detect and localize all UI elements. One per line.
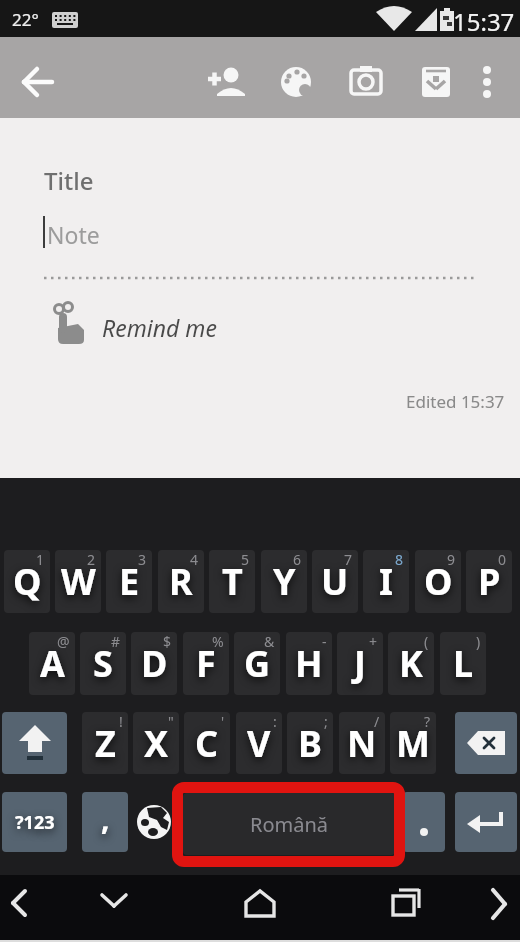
staticText: E [119, 557, 140, 606]
staticText: R [169, 557, 193, 606]
button[interactable]: O [415, 550, 461, 613]
button[interactable]: F [183, 632, 229, 695]
staticText: O [424, 557, 453, 606]
button[interactable] [455, 712, 517, 774]
button[interactable]: H [286, 632, 332, 695]
button[interactable] [0, 878, 40, 928]
button[interactable]: Q [4, 550, 50, 613]
staticText: 0 [498, 550, 507, 569]
button[interactable] [480, 878, 520, 928]
staticText: V [247, 719, 271, 768]
button[interactable] [235, 878, 285, 928]
button[interactable]: K [388, 632, 434, 695]
staticText: L [453, 639, 474, 688]
button[interactable] [90, 878, 140, 928]
staticText: ; [324, 712, 328, 731]
staticText: A [40, 639, 65, 688]
staticText: W [61, 557, 96, 606]
staticText: ? [424, 712, 431, 731]
button[interactable]: ?123 [2, 792, 67, 852]
staticText: Română [250, 811, 329, 838]
button[interactable]: P [466, 550, 512, 613]
button[interactable]: Remind me [40, 298, 300, 358]
staticText: 5 [241, 550, 250, 569]
button[interactable] [204, 58, 252, 106]
button[interactable] [412, 58, 460, 106]
button[interactable]: T [209, 550, 255, 613]
staticText: % [212, 632, 224, 651]
button[interactable]: I [363, 550, 409, 613]
staticText: C [195, 719, 219, 768]
staticText: " [168, 712, 174, 731]
staticText: - [322, 632, 327, 651]
staticText: Title [44, 164, 94, 197]
staticText: & [264, 632, 275, 651]
staticText: 9 [447, 550, 456, 569]
staticText: N [347, 719, 377, 768]
button[interactable]: S [80, 632, 126, 695]
staticText: X [144, 719, 169, 768]
button[interactable]: G [234, 632, 280, 695]
staticText: Q [13, 557, 42, 606]
button[interactable]: Română [183, 793, 395, 855]
button[interactable]: Z [82, 712, 128, 774]
staticText: 1 [36, 550, 45, 569]
button[interactable]: R [158, 550, 204, 613]
staticText: / [374, 712, 380, 731]
staticText: # [111, 632, 121, 651]
button[interactable]: L [440, 632, 486, 695]
staticText: ' [221, 712, 225, 731]
button[interactable]: E [106, 550, 152, 613]
staticText: $ [163, 632, 172, 651]
button[interactable] [455, 792, 517, 852]
button[interactable] [463, 58, 511, 106]
button[interactable]: Y [261, 550, 307, 613]
staticText: U [321, 557, 349, 606]
button[interactable] [272, 58, 320, 106]
staticText: + [369, 632, 378, 651]
button[interactable]: , [82, 792, 128, 852]
staticText: ! [119, 712, 123, 731]
staticText: ) [476, 632, 481, 651]
button[interactable] [380, 878, 430, 928]
staticText: 15:37 [453, 5, 515, 38]
button[interactable] [2, 712, 67, 774]
button[interactable] [14, 58, 62, 106]
staticText: @ [57, 632, 70, 651]
button[interactable]: M [390, 712, 436, 774]
staticText: 7 [344, 550, 353, 569]
staticText: P [478, 557, 501, 606]
staticText: T [222, 557, 243, 606]
button[interactable]: J [337, 632, 383, 695]
button[interactable]: V [236, 712, 282, 774]
staticText: 8 [395, 550, 404, 569]
button[interactable]: A [29, 632, 75, 695]
staticText: Note [47, 219, 100, 250]
staticText: 2 [87, 550, 96, 569]
staticText: 6 [293, 550, 302, 569]
staticText: 22° [12, 8, 39, 31]
staticText: , [101, 798, 110, 839]
button[interactable]: B [287, 712, 333, 774]
staticText: 3 [138, 550, 147, 569]
button[interactable]: X [133, 712, 179, 774]
staticText: B [298, 719, 322, 768]
button[interactable] [133, 792, 175, 852]
button[interactable]: W [55, 550, 101, 613]
button[interactable]: D [131, 632, 177, 695]
staticText: M [396, 719, 430, 768]
staticText: K [399, 639, 423, 688]
staticText: H [295, 639, 323, 688]
staticText: I [379, 557, 394, 606]
staticText: : [273, 712, 277, 731]
staticText: ?123 [15, 810, 55, 835]
button[interactable]: N [339, 712, 385, 774]
button[interactable] [403, 792, 445, 852]
button[interactable] [342, 58, 390, 106]
staticText: Remind me [102, 312, 217, 343]
button[interactable]: C [184, 712, 230, 774]
staticText: ( [424, 632, 429, 651]
staticText: D [141, 639, 168, 688]
button[interactable]: U [312, 550, 358, 613]
staticText: Edited 15:37 [406, 390, 505, 413]
